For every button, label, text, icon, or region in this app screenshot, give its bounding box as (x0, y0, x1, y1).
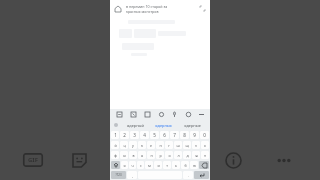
button[interactable]: ч (129, 161, 136, 169)
button[interactable]: 5 (150, 131, 159, 139)
button[interactable]: у (129, 141, 137, 149)
button[interactable]: ?123 (111, 171, 126, 179)
staticText: м (148, 163, 151, 168)
button[interactable]: . (183, 171, 193, 179)
staticText: 5 (153, 132, 156, 138)
staticText: ф (114, 153, 117, 158)
button[interactable]: Shift (111, 161, 120, 169)
button[interactable]: л (174, 151, 182, 159)
button[interactable]: More options (272, 150, 296, 170)
button[interactable]: ь (172, 161, 180, 169)
staticText: в перемин 10 старой за (126, 4, 168, 9)
button[interactable]: , (127, 171, 137, 179)
button[interactable]: е (147, 141, 155, 149)
button[interactable]: б (181, 161, 189, 169)
staticText: г (168, 143, 170, 148)
staticText: ц (123, 143, 126, 148)
staticText: 0 (203, 132, 206, 138)
button[interactable]: 1 (111, 131, 119, 139)
button[interactable]: н (156, 141, 164, 149)
button[interactable]: а (138, 151, 146, 159)
button[interactable]: ы (120, 151, 128, 159)
button[interactable]: щ (183, 141, 191, 149)
button[interactable]: 4 (140, 131, 149, 139)
staticText: п (150, 153, 153, 158)
staticText: в (132, 153, 135, 158)
button[interactable]: 6 (160, 131, 169, 139)
staticText: о (168, 153, 171, 158)
staticText: 4 (143, 132, 146, 138)
staticText: й (114, 143, 117, 148)
button[interactable]: Stickers (70, 151, 88, 169)
button[interactable]: ядерные (178, 120, 207, 130)
button[interactable]: Expand (198, 4, 207, 13)
staticText: л (177, 153, 180, 158)
button[interactable]: т (163, 161, 171, 169)
staticText: р (159, 153, 162, 158)
button[interactable]: з (192, 141, 200, 149)
staticText: 9 (193, 132, 196, 138)
button[interactable]: р (156, 151, 164, 159)
button[interactable]: 7 (170, 131, 179, 139)
button[interactable]: ю (190, 161, 198, 169)
button[interactable]: Collapse (198, 110, 205, 119)
button[interactable]: Stickers (157, 110, 166, 119)
staticText: 8 (183, 132, 186, 138)
button[interactable]: ш (174, 141, 182, 149)
staticText: ядерных (155, 123, 172, 128)
button[interactable]: ядерных (149, 120, 178, 130)
button[interactable]: г (165, 141, 173, 149)
staticText: а (141, 153, 143, 158)
staticText: х (204, 143, 206, 148)
button[interactable]: ж (192, 151, 200, 159)
staticText: 1 (114, 132, 117, 138)
button[interactable]: 9 (190, 131, 199, 139)
staticText: 6 (163, 132, 166, 138)
staticText: ядерные (184, 123, 201, 128)
button[interactable]: я (121, 161, 128, 169)
button[interactable]: Google (113, 122, 119, 128)
staticText: б (184, 163, 187, 168)
staticText: ядерный (127, 123, 144, 128)
button[interactable]: Toolbar menu (115, 110, 124, 119)
staticText: ?123 (115, 173, 122, 177)
button[interactable]: о (165, 151, 173, 159)
button[interactable]: п (147, 151, 155, 159)
staticText: у (132, 143, 134, 148)
button[interactable]: 0 (200, 131, 209, 139)
staticText: д (186, 153, 189, 158)
staticText: т (166, 163, 168, 168)
button[interactable]: в (129, 151, 137, 159)
button[interactable]: ф (111, 151, 119, 159)
button[interactable]: 2 (120, 131, 129, 139)
button[interactable]: с (137, 161, 144, 169)
staticText: ь (175, 163, 177, 168)
button[interactable]: Enter (194, 171, 209, 179)
button[interactable]: Info (222, 149, 244, 171)
button[interactable]: э (201, 151, 209, 159)
button[interactable]: 3 (130, 131, 139, 139)
button[interactable]: м (145, 161, 153, 169)
staticText: 7 (173, 132, 176, 138)
button[interactable]: к (138, 141, 146, 149)
staticText: з (195, 143, 197, 148)
button[interactable]: ядерный (121, 120, 149, 130)
button[interactable]: х (201, 141, 209, 149)
staticText: красных монстров (126, 9, 159, 14)
button[interactable]: GIF (22, 152, 44, 168)
staticText: и (157, 163, 160, 168)
button[interactable]: Voice input (170, 110, 179, 119)
button[interactable]: ц (120, 141, 128, 149)
button[interactable]: Clipboard (143, 110, 152, 119)
button[interactable]: и (154, 161, 162, 169)
button[interactable]: 8 (180, 131, 189, 139)
button[interactable]: й (111, 141, 119, 149)
staticText: е (150, 143, 152, 148)
button[interactable]: д (183, 151, 191, 159)
button[interactable]: Settings (184, 110, 193, 119)
button[interactable]: Backspace (199, 161, 209, 169)
button[interactable]: Translate (129, 110, 138, 119)
button[interactable]: Home (113, 4, 123, 14)
staticText: ы (123, 153, 126, 158)
